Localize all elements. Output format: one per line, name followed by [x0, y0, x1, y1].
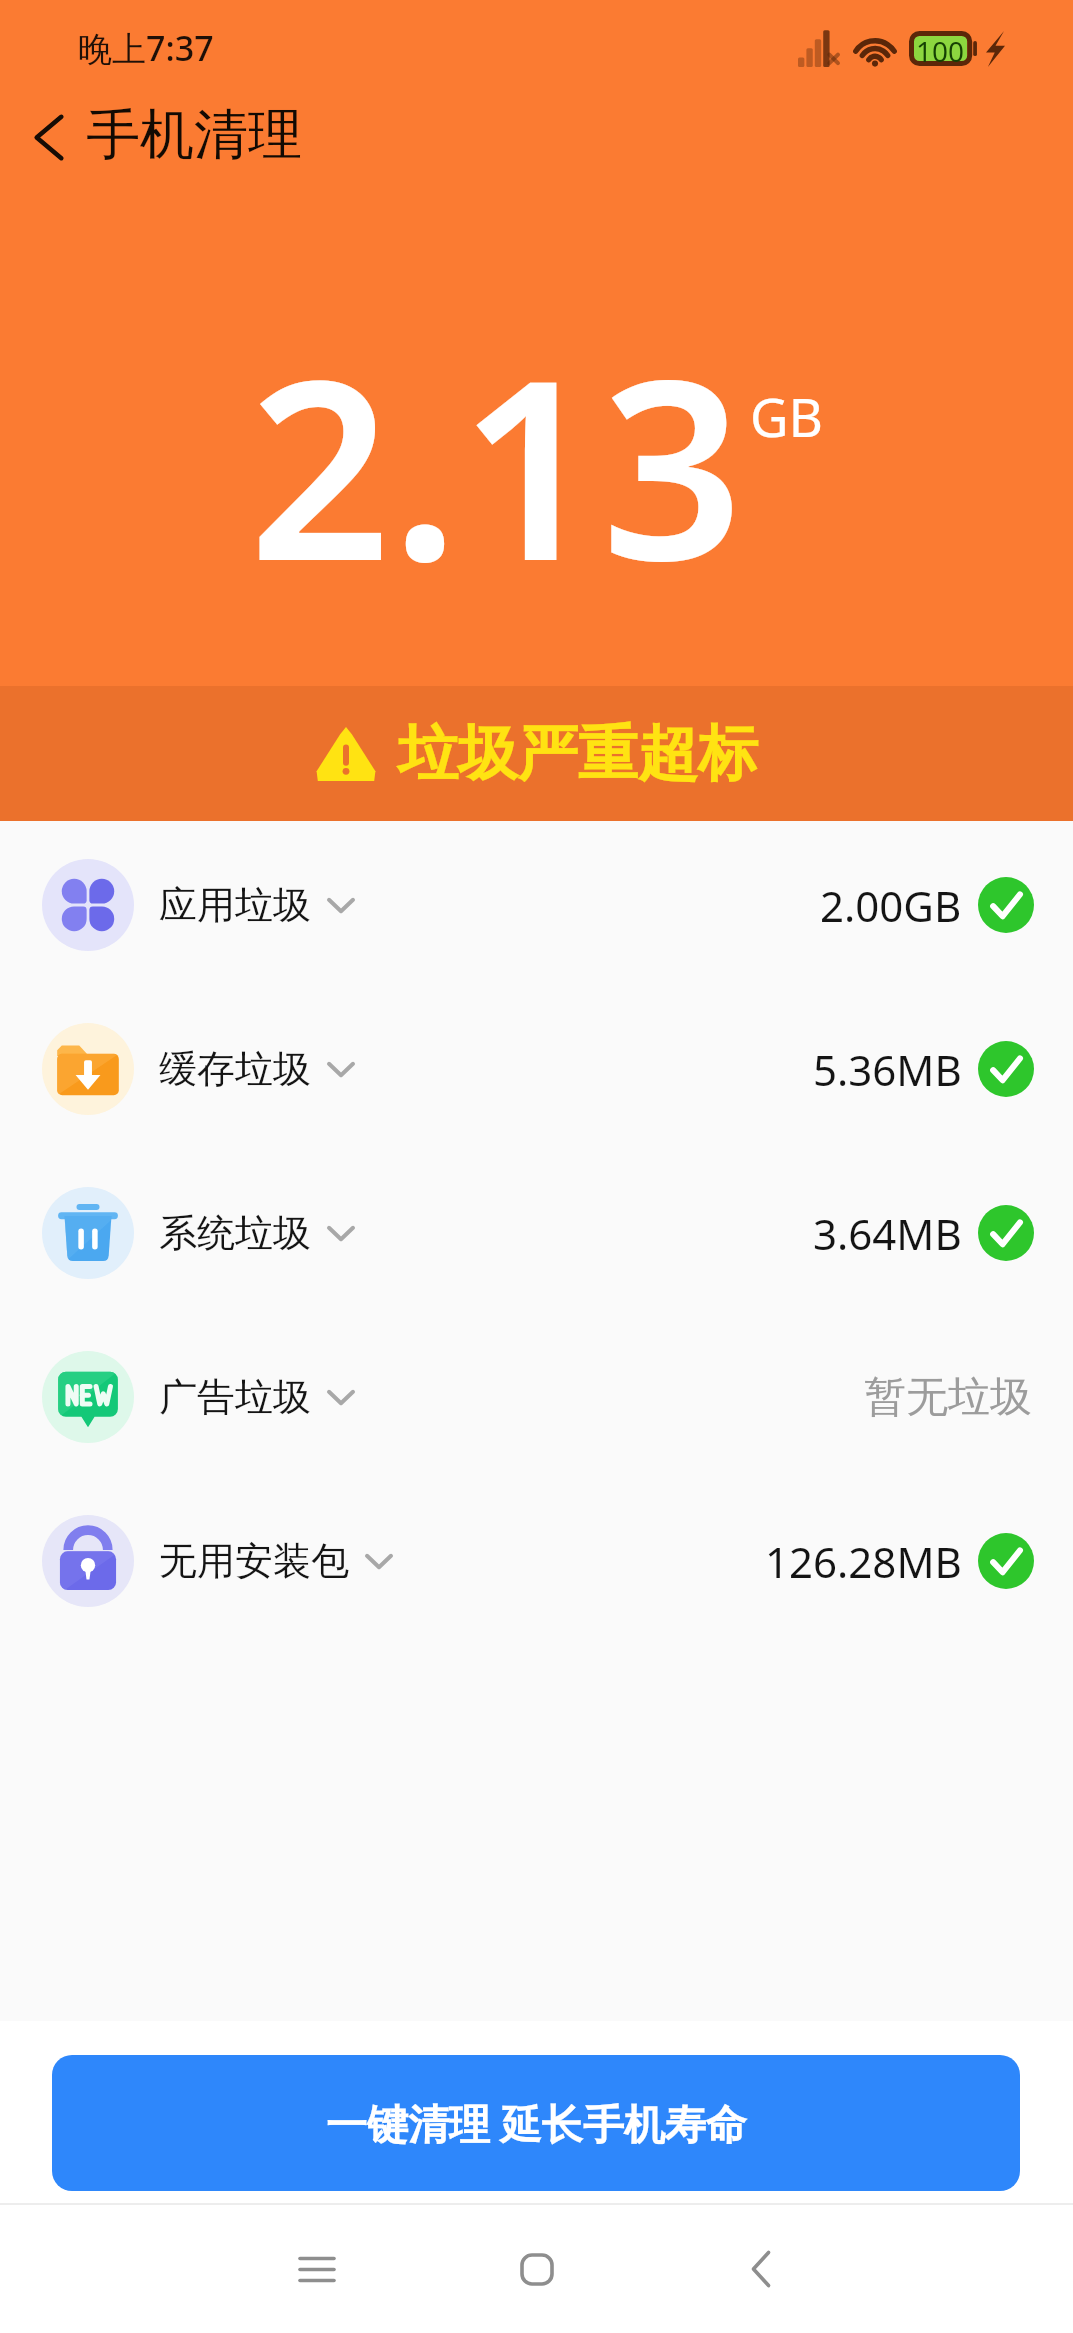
staticText: 暂无垃圾: [864, 1371, 1032, 1424]
staticText: 一键清理 延长手机寿命: [326, 2095, 747, 2151]
button[interactable]: Back: [706, 2205, 816, 2333]
staticText: 系统垃圾: [159, 1209, 311, 1257]
staticText: 5.36MB: [813, 1041, 962, 1098]
button[interactable]: Home: [482, 2205, 592, 2333]
button[interactable]: 一键清理 延长手机寿命: [52, 2055, 1020, 2191]
staticText: 126.28MB: [765, 1533, 962, 1590]
staticText: 晚上7:37: [78, 25, 214, 71]
staticText: 垃圾严重超标: [398, 716, 758, 792]
staticText: 无用安装包: [159, 1537, 349, 1585]
button[interactable]: 缓存垃圾: [0, 987, 1073, 1151]
staticText: 手机清理: [86, 101, 302, 169]
staticText: 2.00GB: [820, 877, 962, 934]
staticText: 3.64MB: [813, 1205, 962, 1262]
staticText: 应用垃圾: [159, 881, 311, 929]
button[interactable]: 广告垃圾: [0, 1315, 1073, 1479]
button[interactable]: 无用安装包: [0, 1479, 1073, 1643]
staticText: 100: [916, 32, 965, 65]
button[interactable]: 应用垃圾: [0, 823, 1073, 987]
button[interactable]: 系统垃圾: [0, 1151, 1073, 1315]
staticText: 缓存垃圾: [159, 1045, 311, 1093]
staticText: 2.13: [249, 295, 744, 633]
staticText: GB: [750, 380, 824, 452]
button[interactable]: Recents: [262, 2205, 372, 2333]
button[interactable]: Back: [14, 102, 84, 172]
staticText: 广告垃圾: [159, 1373, 311, 1421]
